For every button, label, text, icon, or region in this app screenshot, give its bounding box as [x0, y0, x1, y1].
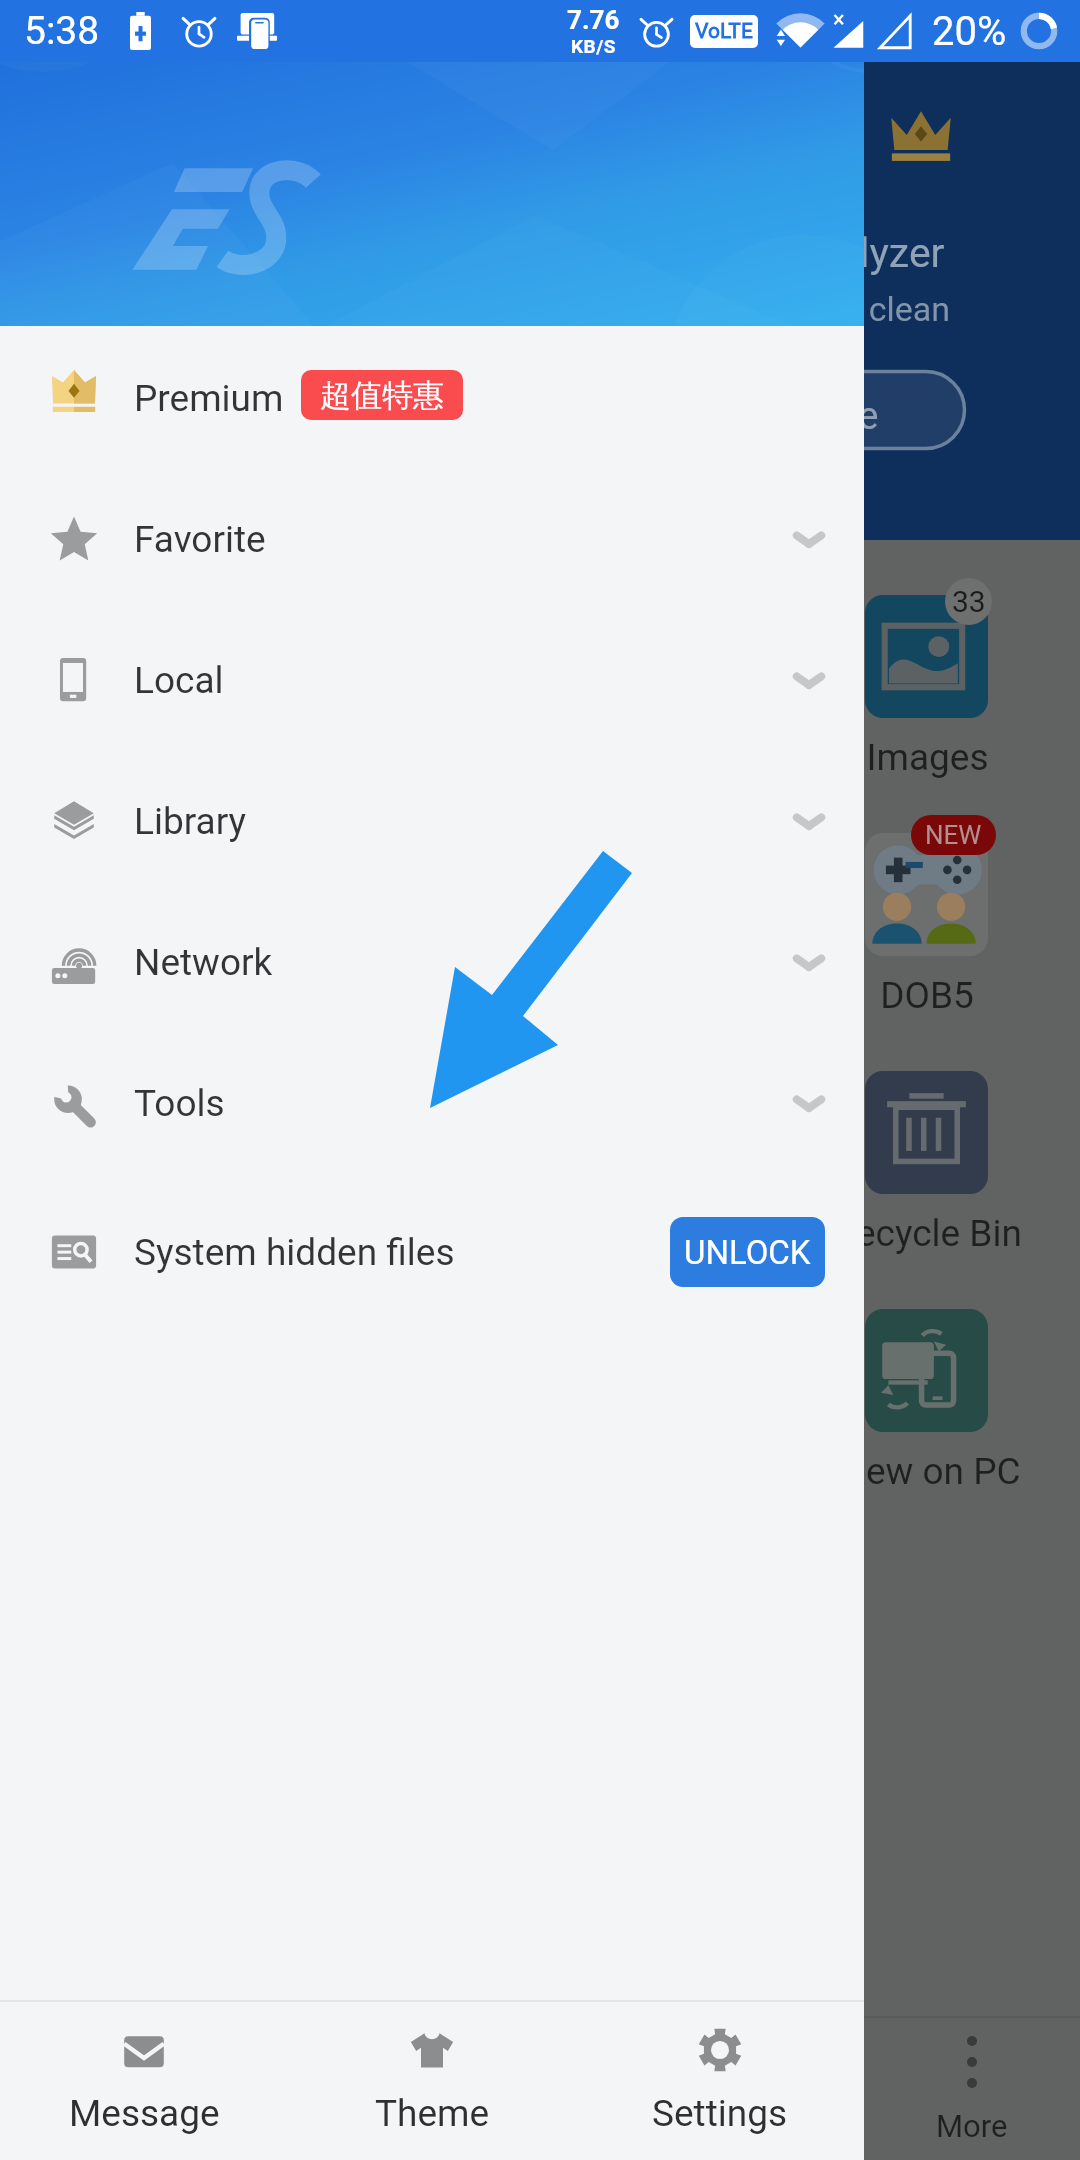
staticText: Library	[134, 800, 247, 843]
button[interactable]: More	[864, 2016, 1080, 2160]
staticText: Images	[866, 736, 989, 779]
staticText: NEW	[925, 820, 982, 850]
staticText: View on PC	[833, 1450, 1021, 1493]
staticText: UNLOCK	[684, 1233, 811, 1272]
staticText: Settings	[652, 2092, 788, 2135]
staticText: Favorite	[134, 518, 266, 561]
staticText: Message	[69, 2092, 220, 2135]
staticText: Theme	[375, 2092, 490, 2135]
button[interactable]: Local	[0, 619, 864, 741]
staticText: 20%	[932, 8, 1007, 55]
staticText: 5:38	[24, 8, 100, 54]
button[interactable]: UNLOCK	[670, 1217, 825, 1287]
staticText: Premium	[134, 377, 284, 420]
staticText: Network	[134, 941, 273, 984]
staticText: System hidden files	[134, 1231, 455, 1274]
button[interactable]: System hidden files	[0, 1183, 864, 1321]
button[interactable]: Favorite	[0, 478, 864, 600]
button[interactable]: Settings	[576, 2002, 864, 2160]
staticText: DOB5	[880, 974, 974, 1017]
button[interactable]: Network	[0, 901, 864, 1023]
button[interactable]: Message	[0, 2002, 288, 2160]
button[interactable]: Theme	[288, 2002, 576, 2160]
staticText: Local	[134, 659, 224, 702]
staticText: VoLTE	[695, 19, 753, 44]
staticText: KB/S	[571, 35, 616, 57]
staticText: Tools	[134, 1082, 225, 1125]
staticText: More	[936, 2108, 1008, 2144]
staticText: Optimize	[728, 394, 879, 439]
button[interactable]: Premium	[0, 330, 864, 466]
staticText: Recycle Bin	[833, 1212, 1022, 1255]
staticText: 7.76	[567, 5, 620, 35]
button[interactable]: Library	[0, 760, 864, 882]
staticText: 超值特惠	[320, 376, 444, 415]
button[interactable]: Tools	[0, 1042, 864, 1164]
staticText: 33	[952, 584, 986, 619]
staticText: ES Disk Analyzer	[641, 229, 945, 277]
staticText: Analyze and clean	[677, 289, 951, 329]
